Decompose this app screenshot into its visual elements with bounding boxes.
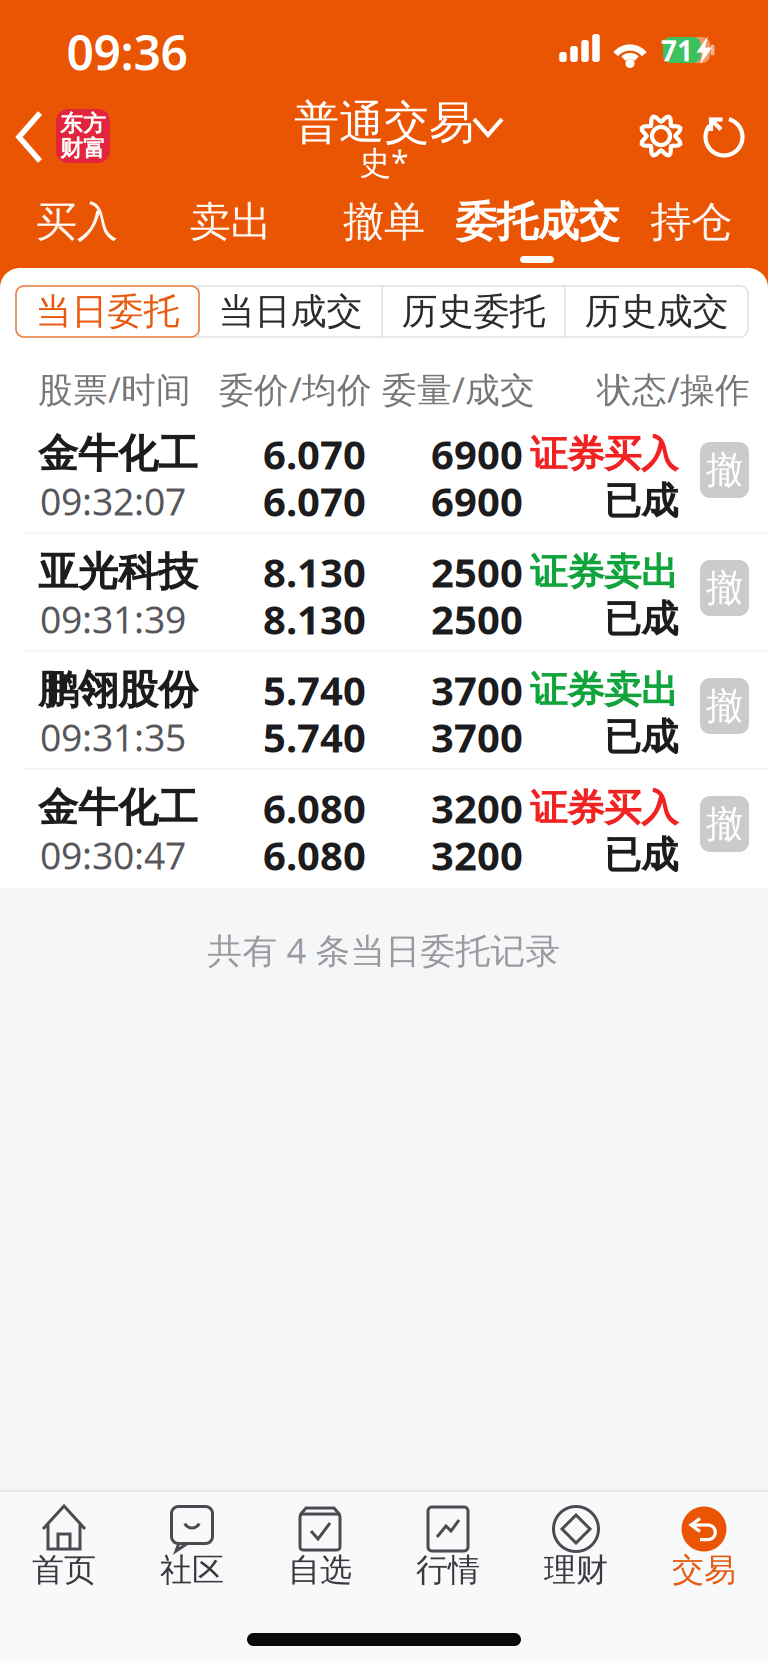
staticText: 已成 [604, 714, 678, 760]
staticText: 自选 [288, 1550, 352, 1590]
staticText: 买入 [36, 197, 118, 247]
button[interactable]: 当日成交 [200, 286, 380, 337]
staticText: 已成 [604, 596, 678, 642]
button[interactable]: 东方财富 [56, 109, 110, 163]
button[interactable]: 历史委托 [383, 286, 563, 337]
staticText: 社区 [160, 1550, 224, 1590]
staticText: 撤 [706, 683, 743, 729]
button[interactable]: 历史成交 [566, 286, 746, 337]
staticText: 理财 [544, 1550, 608, 1590]
button[interactable]: 自选 [264, 1491, 376, 1591]
button[interactable]: 撤 [700, 560, 749, 616]
button[interactable]: 当日委托 [16, 286, 199, 337]
staticText: 普通交易 [294, 95, 474, 151]
staticText: 已成 [604, 478, 678, 524]
staticText: 委托成交 [456, 197, 620, 247]
button[interactable]: 买入 [0, 189, 154, 255]
staticText: 持仓 [650, 197, 732, 247]
button[interactable]: 撤单 [307, 189, 461, 255]
staticText: 71 [661, 32, 693, 69]
staticText: 状态/操作 [597, 366, 750, 412]
button[interactable]: 撤 [700, 678, 749, 734]
button[interactable]: 卖出 [154, 189, 307, 255]
staticText: 已成 [604, 832, 678, 878]
staticText: 共有 4 条当日委托记录 [207, 927, 560, 973]
button[interactable]: 持仓 [614, 189, 768, 255]
staticText: 证券卖出 [530, 667, 678, 713]
staticText: 3700 [431, 663, 523, 716]
staticText: 历史委托 [401, 289, 545, 334]
staticText: 证券卖出 [530, 549, 678, 595]
button[interactable]: 撤 [700, 442, 749, 498]
staticText: 5.740 [263, 710, 366, 763]
button[interactable]: 理财 [520, 1491, 632, 1591]
button[interactable]: 委托成交 [453, 189, 623, 255]
staticText: 东方 [60, 110, 106, 137]
staticText: 3200 [431, 828, 523, 881]
button[interactable]: 首页 [8, 1491, 120, 1591]
staticText: 股票/时间 [38, 366, 191, 412]
staticText: 委价/均价 [219, 366, 372, 412]
button[interactable]: 行情 [392, 1491, 504, 1591]
staticText: 撤 [706, 801, 743, 847]
staticText: 撤单 [343, 197, 425, 247]
button[interactable]: 撤 [700, 796, 749, 852]
staticText: 6900 [431, 427, 523, 480]
staticText: 证券买入 [530, 431, 678, 477]
staticText: 首页 [32, 1550, 96, 1590]
staticText: 6.070 [263, 474, 366, 527]
staticText: 史* [359, 141, 409, 183]
staticText: 6.080 [263, 828, 366, 881]
staticText: 09:30:47 [40, 830, 186, 880]
staticText: 5.740 [263, 663, 366, 716]
staticText: 卖出 [189, 197, 271, 247]
staticText: 8.130 [263, 545, 366, 598]
staticText: 委量/成交 [382, 366, 535, 412]
staticText: 3700 [431, 710, 523, 763]
staticText: 2500 [431, 592, 523, 645]
staticText: 亚光科技 [38, 547, 198, 596]
button[interactable]: Settings [635, 110, 687, 162]
button[interactable]: 普通交易 [284, 99, 514, 149]
staticText: 当日委托 [35, 289, 179, 334]
staticText: 8.130 [263, 592, 366, 645]
staticText: 交易 [672, 1550, 736, 1590]
button[interactable]: Back [8, 106, 52, 168]
staticText: 6.080 [263, 781, 366, 834]
staticText: 6.070 [263, 427, 366, 480]
staticText: 鹏翎股份 [38, 665, 198, 714]
staticText: 历史成交 [584, 289, 728, 334]
button[interactable]: 交易 [648, 1491, 760, 1591]
staticText: 09:32:07 [40, 476, 186, 526]
staticText: 当日成交 [218, 289, 362, 334]
staticText: 金牛化工 [38, 429, 198, 478]
button[interactable]: Refresh [698, 110, 750, 162]
staticText: 撤 [706, 565, 743, 611]
staticText: 09:36 [66, 20, 187, 84]
staticText: 6900 [431, 474, 523, 527]
staticText: 金牛化工 [38, 783, 198, 832]
staticText: 证券买入 [530, 785, 678, 831]
staticText: 行情 [416, 1550, 480, 1590]
staticText: 3200 [431, 781, 523, 834]
staticText: 09:31:35 [40, 712, 186, 762]
staticText: 2500 [431, 545, 523, 598]
button[interactable]: 社区 [136, 1491, 248, 1591]
staticText: 撤 [706, 447, 743, 493]
staticText: 09:31:39 [40, 594, 186, 644]
staticText: 财富 [60, 134, 106, 162]
